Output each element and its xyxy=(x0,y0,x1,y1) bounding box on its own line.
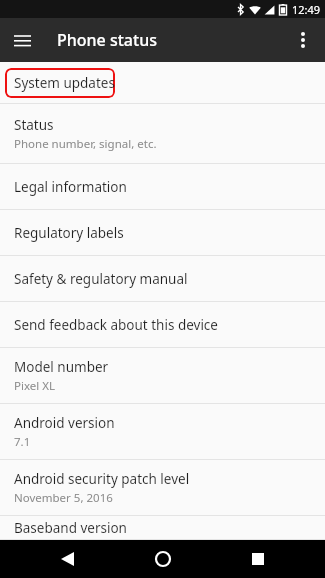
staticText: Phone status xyxy=(57,29,157,51)
button[interactable]: Status xyxy=(0,104,325,164)
button[interactable]: Android version xyxy=(0,404,325,460)
button[interactable]: Back xyxy=(50,542,84,576)
button[interactable]: Android security patch level xyxy=(0,460,325,516)
button[interactable]: Baseband version xyxy=(0,516,325,540)
staticText: Baseband version xyxy=(14,519,127,537)
staticText: 12:49 xyxy=(292,2,321,17)
staticText: Android security patch level xyxy=(14,470,190,488)
staticText: System updates xyxy=(14,74,115,92)
button[interactable]: Send feedback about this device xyxy=(0,302,325,348)
staticText: Pixel XL xyxy=(14,378,55,394)
staticText: Model number xyxy=(14,358,109,376)
button[interactable]: Safety & regulatory manual xyxy=(0,256,325,302)
button[interactable]: Recent apps xyxy=(241,542,275,576)
button[interactable]: Regulatory labels xyxy=(0,210,325,256)
staticText: Regulatory labels xyxy=(14,224,124,242)
staticText: Status xyxy=(14,116,54,134)
button[interactable]: Open navigation menu xyxy=(0,18,44,62)
button[interactable]: System updates xyxy=(0,62,325,104)
staticText: Send feedback about this device xyxy=(14,316,218,334)
button[interactable]: More options xyxy=(281,18,325,62)
button[interactable]: Legal information xyxy=(0,164,325,210)
button[interactable]: Home xyxy=(146,542,180,576)
button[interactable]: Model number xyxy=(0,348,325,404)
staticText: Android version xyxy=(14,414,115,432)
staticText: Safety & regulatory manual xyxy=(14,270,188,288)
staticText: Phone number, signal, etc. xyxy=(14,136,157,152)
staticText: November 5, 2016 xyxy=(14,490,113,506)
staticText: 7.1 xyxy=(14,434,31,450)
staticText: Legal information xyxy=(14,178,127,196)
